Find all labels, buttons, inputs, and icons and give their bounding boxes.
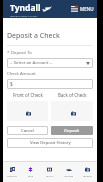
button[interactable]: Cancel bbox=[7, 126, 48, 135]
staticText: -- Select an Account -- bbox=[10, 60, 53, 66]
staticText: DEPOSITS bbox=[83, 175, 92, 177]
button[interactable]: TRANSFER bbox=[59, 162, 78, 182]
button[interactable]: ZELLE bbox=[21, 162, 40, 182]
staticText: Cancel bbox=[21, 128, 35, 134]
staticText: Front of Check bbox=[13, 92, 43, 98]
staticText: TRANSFER bbox=[64, 175, 73, 177]
staticText: * bbox=[7, 50, 10, 56]
staticText: Back of Check bbox=[58, 92, 87, 98]
button[interactable]: $ bbox=[7, 79, 93, 89]
button[interactable]: Tyndall bbox=[10, 2, 41, 17]
staticText: Tyndall bbox=[10, 2, 41, 14]
button[interactable]: Capture Back of Check bbox=[51, 101, 93, 121]
staticText: MENU bbox=[80, 6, 94, 12]
button[interactable]: DEPOSITS bbox=[78, 162, 97, 182]
button[interactable]: Capture Front of Check bbox=[7, 101, 48, 121]
button[interactable]: Deposit bbox=[51, 126, 93, 135]
staticText: BILL PAY bbox=[46, 175, 54, 177]
staticText: FEDERAL CREDIT UNION bbox=[10, 14, 38, 17]
button[interactable]: View Deposit History bbox=[7, 138, 93, 148]
button[interactable]: ACCOUNTS bbox=[3, 162, 21, 182]
staticText: $ bbox=[10, 81, 13, 88]
button[interactable]: BILL PAY bbox=[40, 162, 59, 182]
button[interactable]: -- Select an Account -- bbox=[7, 58, 93, 68]
staticText: View Deposit History bbox=[30, 140, 71, 146]
staticText: Deposit To bbox=[11, 50, 32, 56]
button[interactable]: Menu bbox=[71, 6, 94, 12]
staticText: Deposit a Check bbox=[7, 31, 60, 41]
staticText: Check Amount bbox=[7, 71, 36, 77]
staticText: ACCOUNTS bbox=[7, 175, 17, 177]
staticText: Deposit bbox=[64, 128, 80, 134]
staticText: ZELLE bbox=[28, 175, 33, 177]
